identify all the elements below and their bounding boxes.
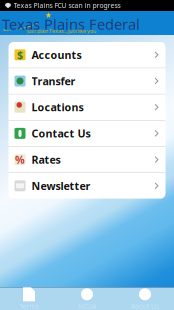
button[interactable]: %	[8, 147, 165, 172]
button[interactable]: Locations	[8, 94, 165, 120]
button[interactable]: Contact Us	[8, 121, 165, 146]
staticText: Rates	[31, 152, 60, 167]
staticText: Terms	[19, 302, 38, 310]
staticText: Newsletter	[31, 179, 90, 193]
staticText: NCUA	[78, 302, 96, 310]
staticText: Locations	[31, 100, 83, 114]
button[interactable]: About Us	[116, 288, 174, 310]
staticText: $	[17, 48, 23, 62]
staticText: About Us	[131, 302, 159, 310]
staticText: Accounts	[31, 48, 81, 62]
staticText: Texas Plains Federal	[2, 14, 140, 34]
button[interactable]: $	[8, 42, 165, 68]
staticText: Contact Us	[31, 126, 90, 140]
staticText: %	[15, 152, 25, 167]
button[interactable]: NCUA	[58, 288, 116, 310]
button[interactable]: Transfer	[8, 68, 165, 94]
staticText: Texas Plains FCU scan in progress	[13, 1, 120, 10]
button[interactable]: Newsletter	[8, 173, 165, 199]
staticText: Just plain Texas... just like you	[27, 27, 96, 35]
button[interactable]: Terms	[0, 288, 58, 310]
staticText: Transfer	[31, 74, 75, 88]
